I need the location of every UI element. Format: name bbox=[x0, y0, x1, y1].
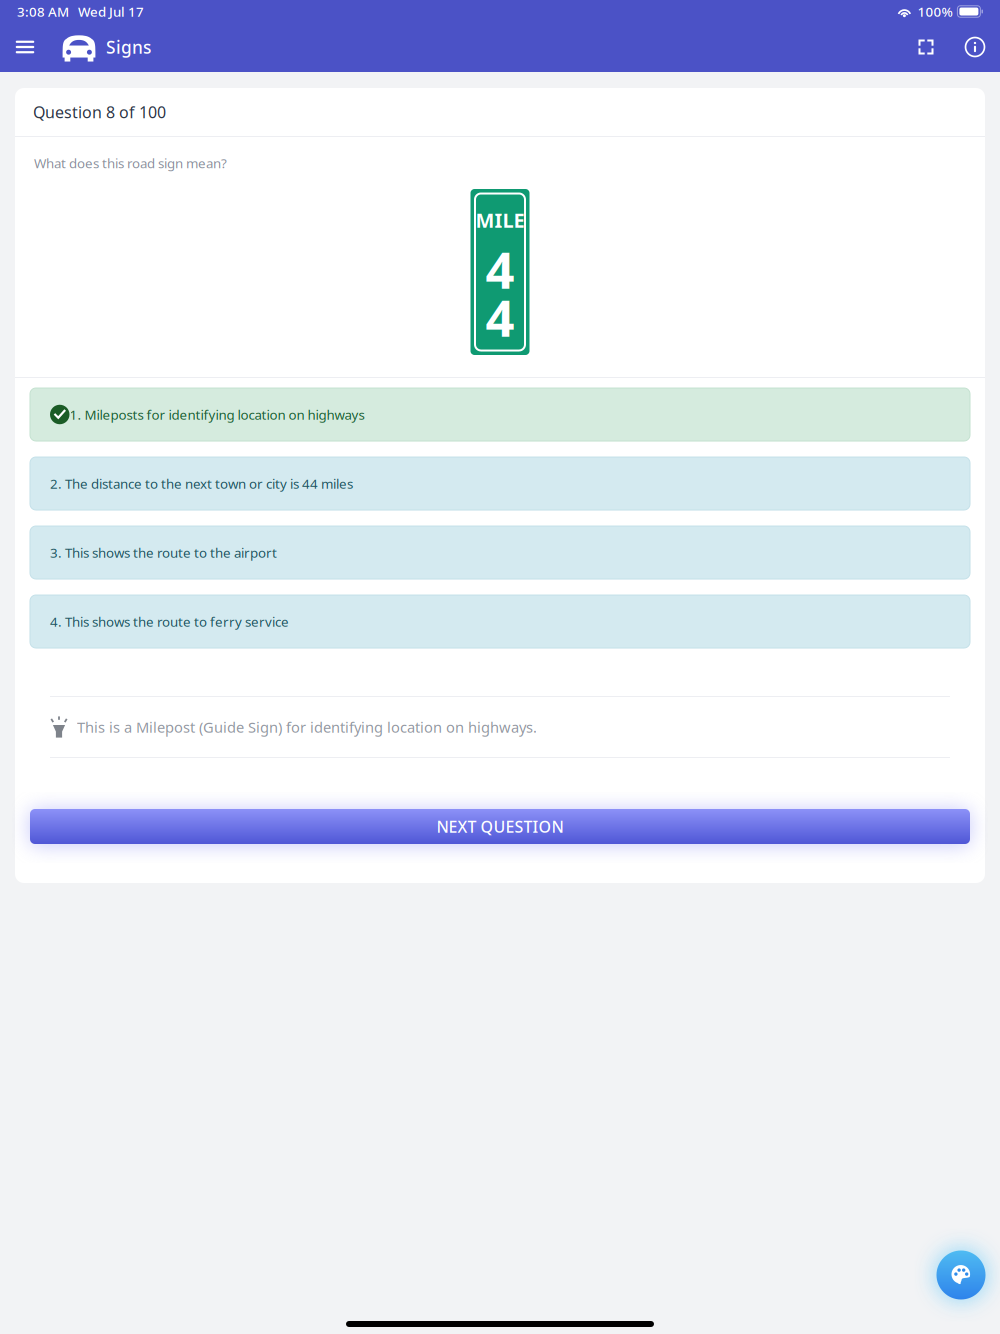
staticText: 3. This shows the route to the airport bbox=[50, 544, 277, 561]
button[interactable]: Theme bbox=[932, 1246, 990, 1304]
button[interactable]: 4. This shows the route to ferry service bbox=[30, 595, 970, 648]
button[interactable]: 1. Mileposts for identifying location on… bbox=[30, 388, 970, 441]
staticText: 3:08 AM bbox=[17, 3, 69, 20]
staticText: 2. The distance to the next town or city… bbox=[50, 475, 353, 492]
staticText: 100% bbox=[917, 3, 952, 20]
staticText: Signs bbox=[106, 35, 151, 58]
button[interactable]: NEXT QUESTION bbox=[30, 809, 970, 844]
staticText: What does this road sign mean? bbox=[34, 154, 227, 172]
staticText: Wed Jul 17 bbox=[78, 3, 144, 20]
staticText: 4 bbox=[485, 235, 514, 303]
button[interactable]: Full screen bbox=[909, 28, 943, 66]
staticText: This is a Milepost (Guide Sign) for iden… bbox=[77, 717, 537, 737]
staticText: 1. Mileposts for identifying location on… bbox=[69, 406, 364, 423]
staticText: 4 bbox=[485, 283, 514, 351]
staticText: Question 8 of 100 bbox=[33, 101, 166, 123]
button[interactable]: 3. This shows the route to the airport bbox=[30, 526, 970, 579]
staticText: MILE bbox=[475, 207, 524, 233]
button[interactable]: Menu bbox=[6, 27, 44, 67]
staticText: NEXT QUESTION bbox=[436, 816, 563, 837]
button[interactable]: 2. The distance to the next town or city… bbox=[30, 457, 970, 510]
staticText: 4. This shows the route to ferry service bbox=[50, 613, 289, 630]
button[interactable]: Info bbox=[958, 28, 992, 66]
